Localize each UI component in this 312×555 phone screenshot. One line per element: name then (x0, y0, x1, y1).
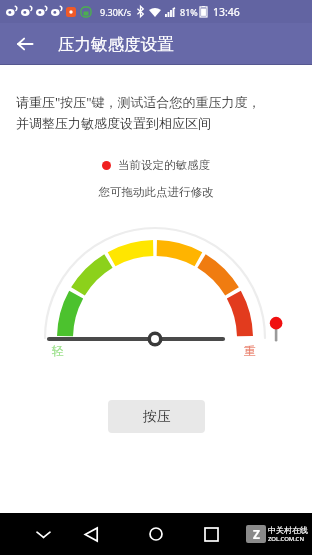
staticText: ZOL.COM.CN (268, 535, 304, 543)
staticText: 轻 (52, 343, 64, 358)
button[interactable]: Back (8, 27, 42, 61)
button[interactable]: Hide keyboard (26, 517, 60, 551)
staticText: 9.30K/s (100, 6, 132, 18)
button[interactable]: Back (72, 515, 110, 553)
staticText: 按压 (143, 408, 171, 426)
staticText: 13:46 (213, 5, 240, 19)
staticText: 重 (244, 343, 256, 358)
button[interactable]: 按压 (108, 400, 205, 433)
staticText: Z (253, 526, 260, 542)
button[interactable]: Recents (192, 515, 230, 553)
staticText: 81% (180, 6, 198, 18)
staticText: 您可拖动此点进行修改 (0, 185, 312, 199)
staticText: 请重压"按压"键，测试适合您的重压力度， 并调整压力敏感度设置到相应区间 (16, 93, 296, 132)
staticText: 当前设定的敏感度 (118, 158, 210, 172)
button[interactable]: Home (137, 515, 175, 553)
staticText: 中关村在线 (268, 525, 308, 535)
staticText: 压力敏感度设置 (58, 34, 174, 55)
